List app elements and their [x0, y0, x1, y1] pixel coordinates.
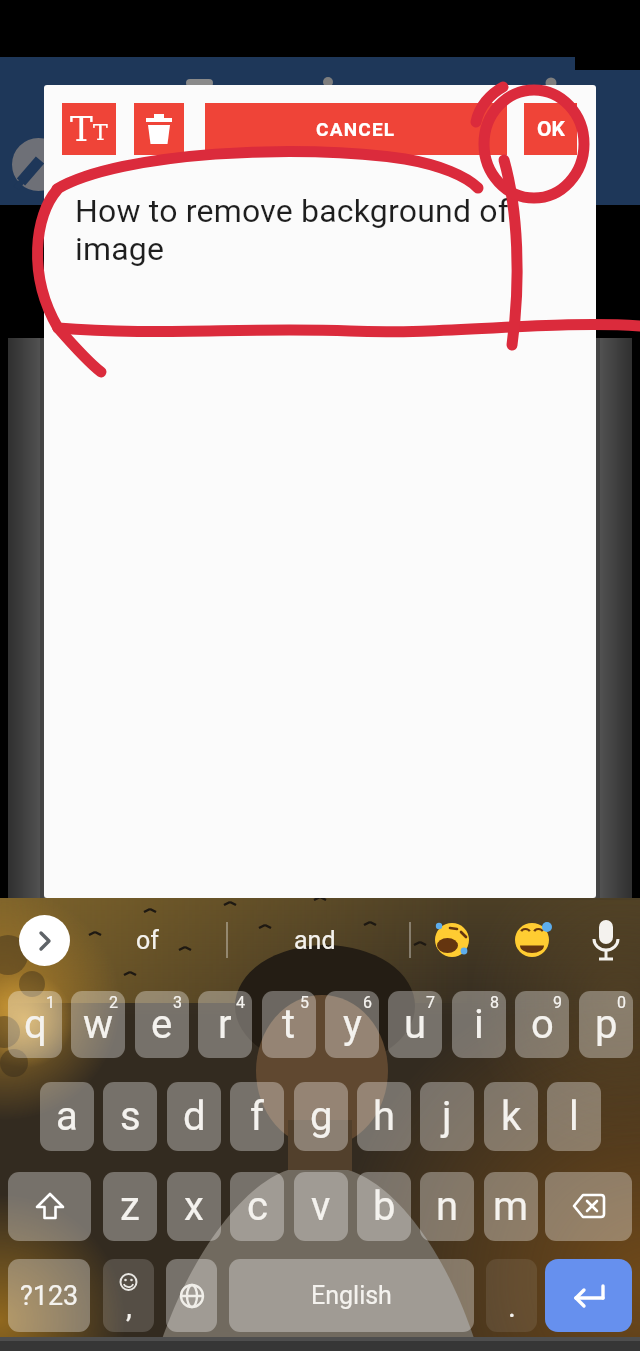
button[interactable]: l [547, 1082, 601, 1151]
button[interactable]: i [452, 991, 506, 1058]
staticText: q [24, 1001, 47, 1048]
button[interactable]: j [420, 1082, 474, 1151]
staticText: f [250, 1093, 264, 1140]
button[interactable]: ?123 [8, 1259, 90, 1332]
button[interactable]: n [420, 1172, 474, 1241]
staticText: of [136, 926, 159, 955]
staticText: OK [537, 117, 565, 142]
button[interactable]: p [579, 991, 633, 1058]
button[interactable] [545, 1172, 632, 1241]
staticText: 2 [109, 993, 118, 1012]
button[interactable] [134, 103, 184, 155]
staticText: c [247, 1183, 268, 1230]
staticText: i [474, 1001, 484, 1048]
button[interactable] [545, 1259, 632, 1332]
staticText: b [373, 1183, 396, 1230]
staticText: 4 [236, 993, 245, 1012]
button[interactable]: OK [524, 103, 577, 155]
button[interactable]: t [262, 991, 316, 1058]
button[interactable]: CANCEL [205, 103, 507, 155]
staticText: s [120, 1093, 141, 1140]
button[interactable]: q [8, 991, 62, 1058]
button[interactable]: English [229, 1259, 474, 1332]
staticText: 3 [173, 993, 182, 1012]
button[interactable]: of [90, 905, 205, 975]
button[interactable]: g [294, 1082, 348, 1151]
staticText: 6 [363, 993, 372, 1012]
staticText: 5 [300, 993, 309, 1012]
button[interactable]: m [484, 1172, 538, 1241]
staticText: n [436, 1183, 459, 1230]
button[interactable]: r [198, 991, 252, 1058]
button[interactable]: c [230, 1172, 284, 1241]
button[interactable]: v [294, 1172, 348, 1241]
staticText: 9 [553, 993, 562, 1012]
staticText: o [531, 1001, 554, 1048]
staticText: d [183, 1093, 206, 1140]
button[interactable]: z [103, 1172, 157, 1241]
staticText: T [93, 120, 108, 146]
staticText: How to remove background of [75, 192, 510, 230]
button[interactable]: w [71, 991, 125, 1058]
button[interactable]: o [515, 991, 569, 1058]
staticText: 7 [426, 993, 435, 1012]
staticText: 1 [46, 993, 55, 1012]
staticText: j [442, 1093, 452, 1140]
staticText: r [218, 1001, 232, 1048]
staticText: English [311, 1281, 392, 1310]
staticText: w [83, 1001, 114, 1048]
staticText: CANCEL [316, 118, 396, 140]
staticText: u [404, 1001, 427, 1048]
staticText: T [70, 109, 93, 149]
button[interactable]: and [240, 905, 390, 975]
staticText: k [501, 1093, 522, 1140]
button[interactable]: d [167, 1082, 221, 1151]
staticText: h [373, 1093, 396, 1140]
staticText: p [595, 1001, 618, 1048]
button[interactable]: e [135, 991, 189, 1058]
staticText: y [343, 1001, 362, 1048]
staticText: g [310, 1093, 333, 1140]
staticText: t [282, 1001, 296, 1048]
staticText: l [569, 1093, 579, 1140]
button[interactable]: h [357, 1082, 411, 1151]
staticText: and [294, 926, 336, 955]
button[interactable]: . [486, 1259, 537, 1332]
button[interactable]: f [230, 1082, 284, 1151]
staticText: a [56, 1093, 78, 1140]
button[interactable]: s [103, 1082, 157, 1151]
staticText: v [311, 1183, 331, 1230]
staticText: e [151, 1001, 173, 1048]
button[interactable]: y [325, 991, 379, 1058]
button[interactable]: x [167, 1172, 221, 1241]
staticText: ?123 [20, 1280, 79, 1312]
button[interactable] [166, 1259, 217, 1332]
staticText: , [126, 1289, 132, 1324]
button[interactable]: u [388, 991, 442, 1058]
staticText: x [184, 1183, 204, 1230]
staticText: z [120, 1183, 140, 1230]
button[interactable]: , [103, 1259, 154, 1332]
button[interactable] [8, 1172, 91, 1241]
staticText: 0 [617, 993, 626, 1012]
staticText: 8 [490, 993, 499, 1012]
button[interactable]: a [40, 1082, 94, 1151]
button[interactable] [19, 915, 70, 966]
button[interactable]: k [484, 1082, 538, 1151]
staticText: image [75, 230, 165, 268]
button[interactable]: T [62, 103, 116, 155]
button[interactable]: b [357, 1172, 411, 1241]
staticText: . [508, 1289, 516, 1324]
staticText: m [493, 1183, 529, 1230]
